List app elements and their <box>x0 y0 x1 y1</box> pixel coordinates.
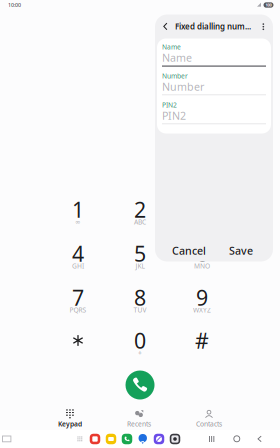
staticText: 100 <box>265 2 271 8</box>
staticText: Cancel <box>172 243 206 258</box>
button[interactable]: Contacts <box>178 408 240 430</box>
button[interactable]: Back <box>257 435 263 442</box>
button[interactable]: Keypad <box>39 408 101 430</box>
button[interactable]: 0 <box>112 324 168 364</box>
staticText: PQRS <box>69 306 86 314</box>
staticText: Save <box>229 243 253 258</box>
button[interactable]: More options <box>259 17 268 35</box>
button[interactable]: App <box>153 433 165 445</box>
button[interactable]: App <box>169 433 181 445</box>
staticText: Number <box>162 79 204 94</box>
button[interactable]: App <box>89 433 101 445</box>
button[interactable]: Save <box>222 240 260 260</box>
staticText: Name <box>162 43 181 51</box>
button[interactable]: Cancel <box>166 240 212 260</box>
button[interactable]: Back <box>160 17 171 35</box>
staticText: 6 <box>196 239 208 268</box>
button[interactable]: # <box>174 324 230 364</box>
button[interactable] <box>50 324 106 364</box>
staticText: Number <box>162 72 188 80</box>
staticText: 4 <box>72 239 84 268</box>
staticText: ∞ <box>75 218 81 226</box>
button[interactable]: 6 <box>174 237 230 277</box>
button[interactable]: App <box>121 433 133 445</box>
staticText: 9 <box>196 283 208 312</box>
staticText: 5 <box>134 239 146 268</box>
staticText: JKL <box>135 262 144 270</box>
staticText: 8 <box>134 283 146 312</box>
button[interactable]: 7 <box>50 281 106 321</box>
staticText: 2 <box>134 195 146 224</box>
button[interactable]: Recent apps <box>209 436 215 442</box>
staticText: GHI <box>72 262 84 270</box>
button[interactable]: Home <box>233 435 240 442</box>
button[interactable]: 1 <box>50 193 106 233</box>
staticText: + <box>138 349 142 357</box>
staticText: ABC <box>134 218 146 226</box>
button[interactable]: 9 <box>174 281 230 321</box>
staticText: TUV <box>133 306 146 314</box>
staticText: Recents <box>127 420 151 428</box>
button[interactable]: Messenger <box>138 434 148 444</box>
staticText: # <box>195 326 209 355</box>
staticText: Contacts <box>196 420 222 428</box>
button[interactable]: App <box>105 433 117 445</box>
staticText: 0 <box>134 326 146 355</box>
button[interactable]: 4 <box>50 237 106 277</box>
staticText: PIN2 <box>162 101 177 109</box>
staticText: Fixed dialling num... <box>175 21 251 32</box>
staticText: Keypad <box>58 420 82 428</box>
button[interactable]: 5 <box>112 237 168 277</box>
staticText: 10:00 <box>8 1 21 9</box>
button[interactable]: Recents <box>108 408 170 430</box>
staticText: PIN2 <box>162 108 186 123</box>
staticText: MNO <box>194 262 210 270</box>
staticText: WXYZ <box>193 306 211 314</box>
staticText: 1 <box>72 195 84 224</box>
staticText: 7 <box>72 283 84 312</box>
button[interactable]: Call <box>123 368 157 402</box>
button[interactable]: 2 <box>112 193 168 233</box>
staticText: Name <box>162 50 192 65</box>
button[interactable]: 8 <box>112 281 168 321</box>
